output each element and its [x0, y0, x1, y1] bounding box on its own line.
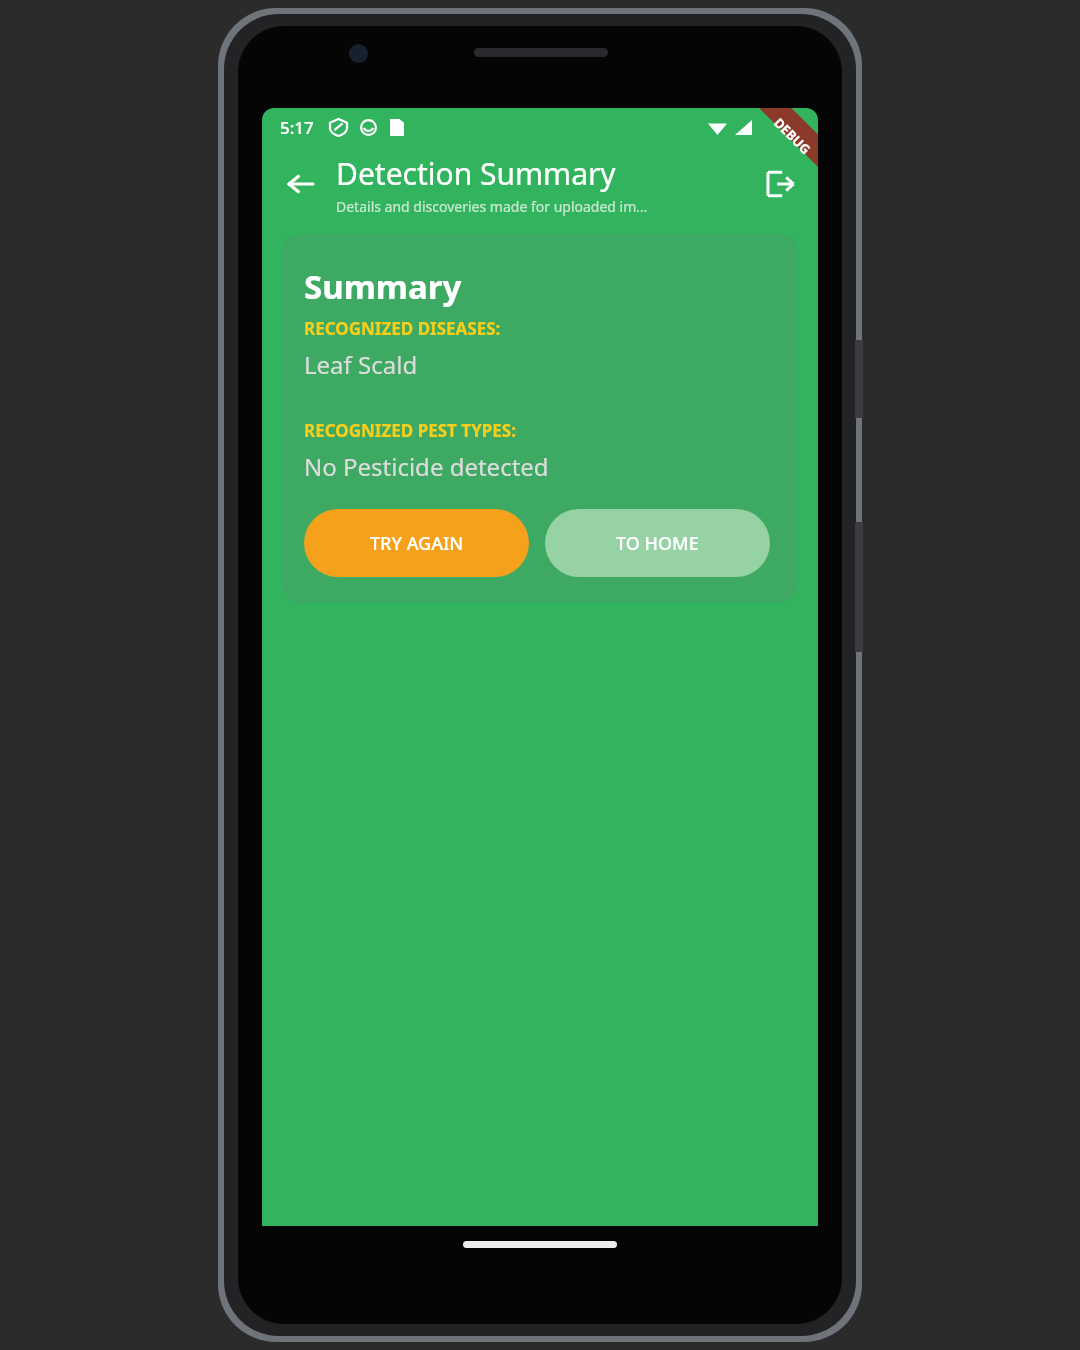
staticText: RECOGNIZED DISEASES:	[304, 317, 501, 340]
button[interactable]: TRY AGAIN	[304, 509, 529, 577]
staticText: No Pesticide detected	[304, 450, 549, 483]
staticText: RECOGNIZED PEST TYPES:	[304, 419, 517, 442]
staticText: Details and discoveries made for uploade…	[336, 197, 648, 216]
staticText: Summary	[304, 264, 462, 309]
staticText: Detection Summary	[336, 153, 616, 194]
staticText: TO HOME	[616, 531, 699, 556]
staticText: Leaf Scald	[304, 348, 418, 381]
staticText: DEBUG	[770, 114, 815, 158]
button[interactable]: TO HOME	[545, 509, 770, 577]
staticText: TRY AGAIN	[370, 531, 464, 556]
staticText: 5:17	[280, 116, 314, 139]
button[interactable]: Log out	[756, 160, 804, 208]
button[interactable]: Back	[276, 160, 324, 208]
